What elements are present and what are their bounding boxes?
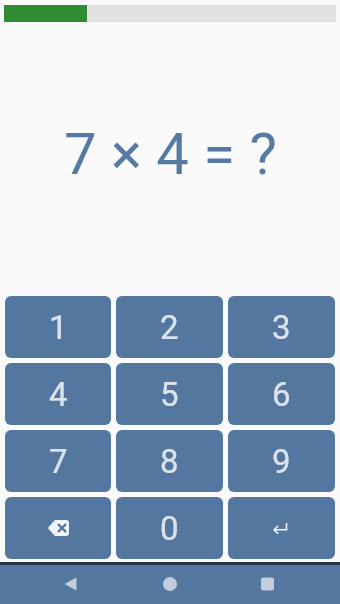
staticText: 1 (49, 308, 68, 347)
button[interactable] (247, 565, 287, 604)
staticText: 9 (272, 442, 291, 481)
staticText: 7 × 4 = ? (64, 120, 277, 188)
staticText: 8 (160, 442, 179, 481)
staticText: 0 (160, 509, 179, 548)
button[interactable]: 5 (116, 363, 223, 425)
button[interactable] (5, 497, 111, 559)
button[interactable]: 9 (228, 430, 335, 492)
staticText: 3 (272, 308, 291, 347)
button[interactable]: 8 (116, 430, 223, 492)
button[interactable]: 2 (116, 296, 223, 358)
button[interactable]: 6 (228, 363, 335, 425)
button[interactable]: 4 (5, 363, 111, 425)
button[interactable]: 3 (228, 296, 335, 358)
staticText: 4 (49, 375, 68, 414)
button[interactable]: 1 (5, 296, 111, 358)
button[interactable]: 0 (116, 497, 223, 559)
staticText: 6 (272, 375, 291, 414)
button[interactable]: 7 (5, 430, 111, 492)
button[interactable] (228, 497, 335, 559)
staticText: 7 (49, 442, 68, 481)
button[interactable] (150, 565, 190, 604)
button[interactable] (50, 565, 90, 604)
staticText: 2 (160, 308, 179, 347)
staticText: 5 (160, 375, 179, 414)
